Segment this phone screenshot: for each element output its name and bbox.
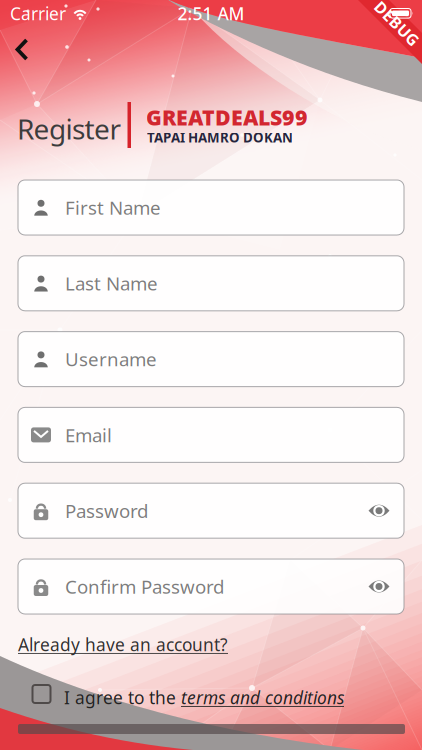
button[interactable]: Username <box>18 332 404 387</box>
button[interactable] <box>32 685 50 703</box>
button[interactable] <box>368 580 404 593</box>
staticText: Register <box>17 110 121 147</box>
staticText: I agree to the <box>64 686 181 709</box>
staticText: Last Name <box>65 271 158 296</box>
button[interactable] <box>10 37 36 62</box>
staticText: Email <box>65 422 112 447</box>
staticText: First Name <box>65 195 161 220</box>
staticText: Password <box>65 498 148 523</box>
staticText: Already have an account? <box>18 633 228 656</box>
staticText: TAPAI HAMRO DOKAN <box>147 128 293 146</box>
button[interactable]: Last Name <box>18 256 404 311</box>
button[interactable]: First Name <box>18 180 404 235</box>
staticText: Carrier <box>10 2 66 25</box>
button[interactable]: I agree to the <box>64 686 344 709</box>
button[interactable]: Email <box>18 407 404 462</box>
staticText: GREATDEALS99 <box>146 103 308 131</box>
button[interactable]: Already have an account? <box>18 633 228 656</box>
staticText: DEBUG <box>369 13 422 34</box>
staticText: Username <box>65 347 157 371</box>
button[interactable]: Password <box>18 483 404 538</box>
staticText: Confirm Password <box>65 574 224 599</box>
staticText: terms and conditions <box>181 686 344 709</box>
button[interactable] <box>368 504 404 517</box>
button[interactable]: Confirm Password <box>18 559 404 614</box>
button[interactable] <box>18 724 405 734</box>
staticText: 2:51 AM <box>177 2 244 25</box>
